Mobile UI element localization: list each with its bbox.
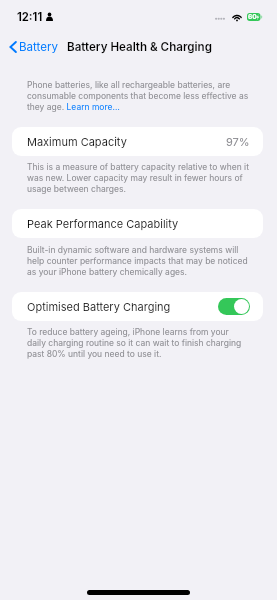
staticText: Battery bbox=[19, 40, 59, 54]
staticText: This is a measure of battery capacity re… bbox=[27, 162, 250, 194]
staticText: Optimised Battery Charging bbox=[27, 300, 171, 313]
button[interactable]: Optimised Battery Charging bbox=[12, 292, 263, 321]
button[interactable]: Battery bbox=[5, 36, 62, 58]
button[interactable]: Optimised Battery Charging bbox=[218, 298, 250, 315]
staticText: Peak Performance Capability bbox=[27, 217, 179, 230]
button[interactable]: Peak Performance Capability bbox=[12, 209, 263, 238]
staticText: 12:11 bbox=[17, 10, 43, 24]
staticText: Maximum Capacity bbox=[27, 135, 127, 148]
staticText: Built-in dynamic software and hardware s… bbox=[27, 245, 250, 277]
staticText: 97% bbox=[226, 135, 250, 148]
staticText: Battery Health & Charging bbox=[67, 40, 212, 54]
button[interactable]: Maximum Capacity bbox=[12, 127, 263, 156]
staticText: Phone batteries, like all rechargeable b… bbox=[27, 80, 250, 112]
staticText: 60 bbox=[248, 13, 257, 21]
staticText: To reduce battery ageing, iPhone learns … bbox=[27, 327, 250, 359]
